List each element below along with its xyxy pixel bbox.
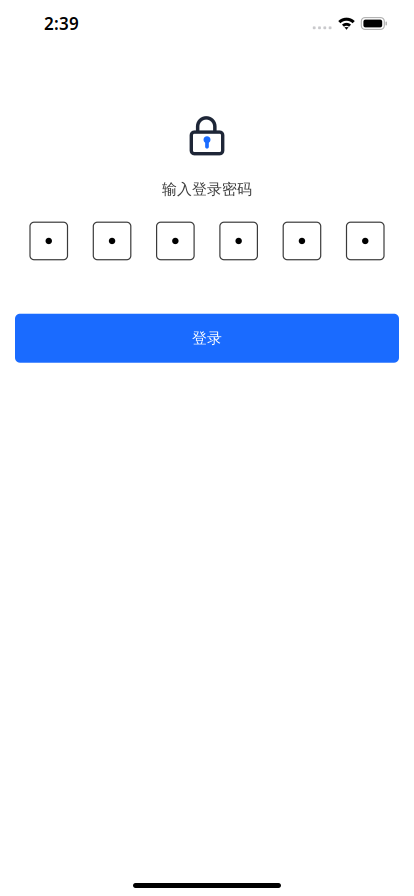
staticText: 输入登录密码 (162, 180, 252, 199)
button[interactable]: Passcode digit (283, 222, 321, 260)
button[interactable]: Passcode digit (30, 222, 67, 260)
staticText: 登录 (192, 329, 222, 348)
button[interactable]: Passcode digit (346, 222, 384, 260)
button[interactable]: Passcode digit (220, 222, 257, 260)
staticText: 2:39 (44, 12, 79, 35)
button[interactable]: Passcode digit (93, 222, 131, 260)
button[interactable]: Passcode digit (157, 222, 194, 260)
button[interactable]: 登录 (15, 314, 399, 363)
